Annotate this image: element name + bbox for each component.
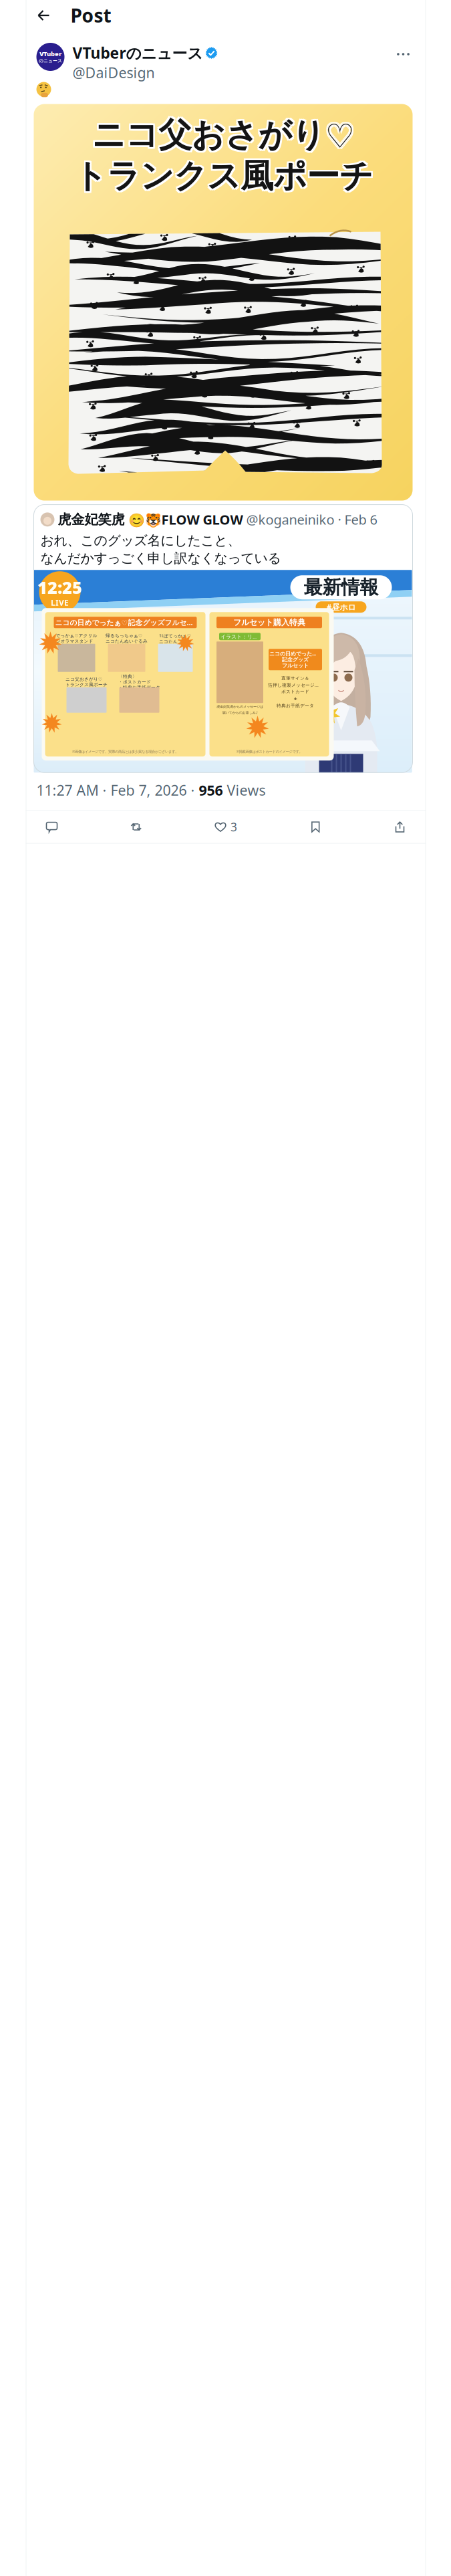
staticText: ＋ <box>293 695 298 702</box>
staticText: VTuberのニュース <box>72 43 203 63</box>
staticText: 12:25 <box>37 576 82 599</box>
staticText: Post <box>70 3 111 28</box>
staticText: ニコ父おさがり♡ トランクス風ポーチ <box>65 676 108 687</box>
staticText: ニコ父おさがり♡ <box>93 115 356 155</box>
staticText: 最新情報 <box>304 576 379 599</box>
button[interactable]: Repost <box>126 817 146 837</box>
staticText: ニコ父おさがり♡ <box>92 113 354 154</box>
staticText: イラスト：リノダイダ <box>220 633 259 640</box>
staticText: ニコ父おさがり♡ <box>92 116 354 157</box>
staticText: ニコ父おさがり♡ <box>92 115 354 155</box>
staticText: おれ、このグッズ名にしたこと、 <box>40 532 241 549</box>
staticText: のニュース <box>39 58 62 64</box>
staticText: トランクス風ポーチ <box>72 157 371 198</box>
staticText: ニコ父おさがり♡ <box>93 113 356 154</box>
staticText: トランクス風ポーチ <box>73 156 373 196</box>
staticText: ニコ父おさがり♡ <box>90 116 353 157</box>
staticText: @koganeiniko · Feb 6 <box>246 511 377 528</box>
staticText: Views <box>223 781 266 799</box>
staticText: @DaiDesign <box>72 63 155 82</box>
staticText: ニコの日めでったぁ♡ <box>269 650 321 657</box>
staticText: フルセット購入特典 <box>233 618 305 627</box>
staticText: トランクス風ポーチ <box>73 157 373 198</box>
staticText: 特典お手紙データ <box>277 703 314 708</box>
staticText: 虎金妃笑虎からのメッセージは <box>216 705 263 709</box>
staticText: VTuber <box>39 50 61 58</box>
staticText: フルセット <box>282 662 309 669</box>
staticText: でっかぁ♡アクリル ジオラマスタンド <box>56 633 97 644</box>
staticText: ニコ父おさがり♡ <box>92 115 354 155</box>
button[interactable]: 3 <box>210 815 241 839</box>
staticText: トランクス風ポーチ <box>72 154 371 195</box>
staticText: ※画像はイメージです。実際の商品とは多少異なる場合がございます。 <box>72 749 178 754</box>
staticText: 3 <box>231 819 237 835</box>
staticText: 直筆サイン＆ <box>281 675 309 681</box>
staticText: ニコ父おさがり♡ <box>90 113 353 154</box>
staticText: ※掲載画像はポストカードのイメージです。 <box>236 749 302 754</box>
staticText: 届いてからのお楽しみ♪ <box>222 711 258 715</box>
staticText: トランクス風ポーチ <box>73 154 373 195</box>
staticText: ニコの日めでったぁ♡記念グッズフルセット <box>55 618 195 627</box>
staticText: 😊🐯FLOW GLOW <box>128 511 243 528</box>
staticText: トランクス風ポーチ <box>72 156 371 196</box>
staticText: トランクス風ポーチ <box>75 154 374 195</box>
button[interactable]: More <box>391 43 415 66</box>
staticText: 記念グッズ <box>282 656 309 663</box>
staticText: ニコ父おさがり♡ <box>90 115 353 155</box>
staticText: トランクス風ポーチ <box>75 157 374 198</box>
button[interactable]: Reply <box>42 817 62 837</box>
button[interactable]: Share <box>390 817 410 837</box>
staticText: ニコ父おさがり♡ <box>93 116 356 157</box>
staticText: なんだかすっごく申し訳なくなっている <box>40 550 281 567</box>
staticText: LIVE <box>51 597 69 608</box>
staticText: トランクス風ポーチ <box>73 156 373 196</box>
staticText: 帰るちっちゃぁ♡ ニコたんぬいぐるみ <box>106 633 148 644</box>
staticText: 〈特典〉 ・ポストカード ・特典お手紙データ <box>118 674 160 690</box>
staticText: 1Lぼてっかぁ♡ ニコたんブラー <box>159 633 192 644</box>
button[interactable]: Back <box>31 3 56 28</box>
staticText: 956 <box>199 781 223 799</box>
staticText: 虎金妃笑虎 <box>58 511 125 528</box>
staticText: 11:27 AM · Feb 7, 2026 · <box>36 781 199 799</box>
staticText: ポストカード <box>281 689 309 694</box>
staticText: 箔押し複製メッセージ入り <box>268 682 323 688</box>
button[interactable]: Bookmark <box>305 817 326 837</box>
staticText: #昼ホロ <box>326 602 356 612</box>
staticText: トランクス風ポーチ <box>75 156 374 196</box>
